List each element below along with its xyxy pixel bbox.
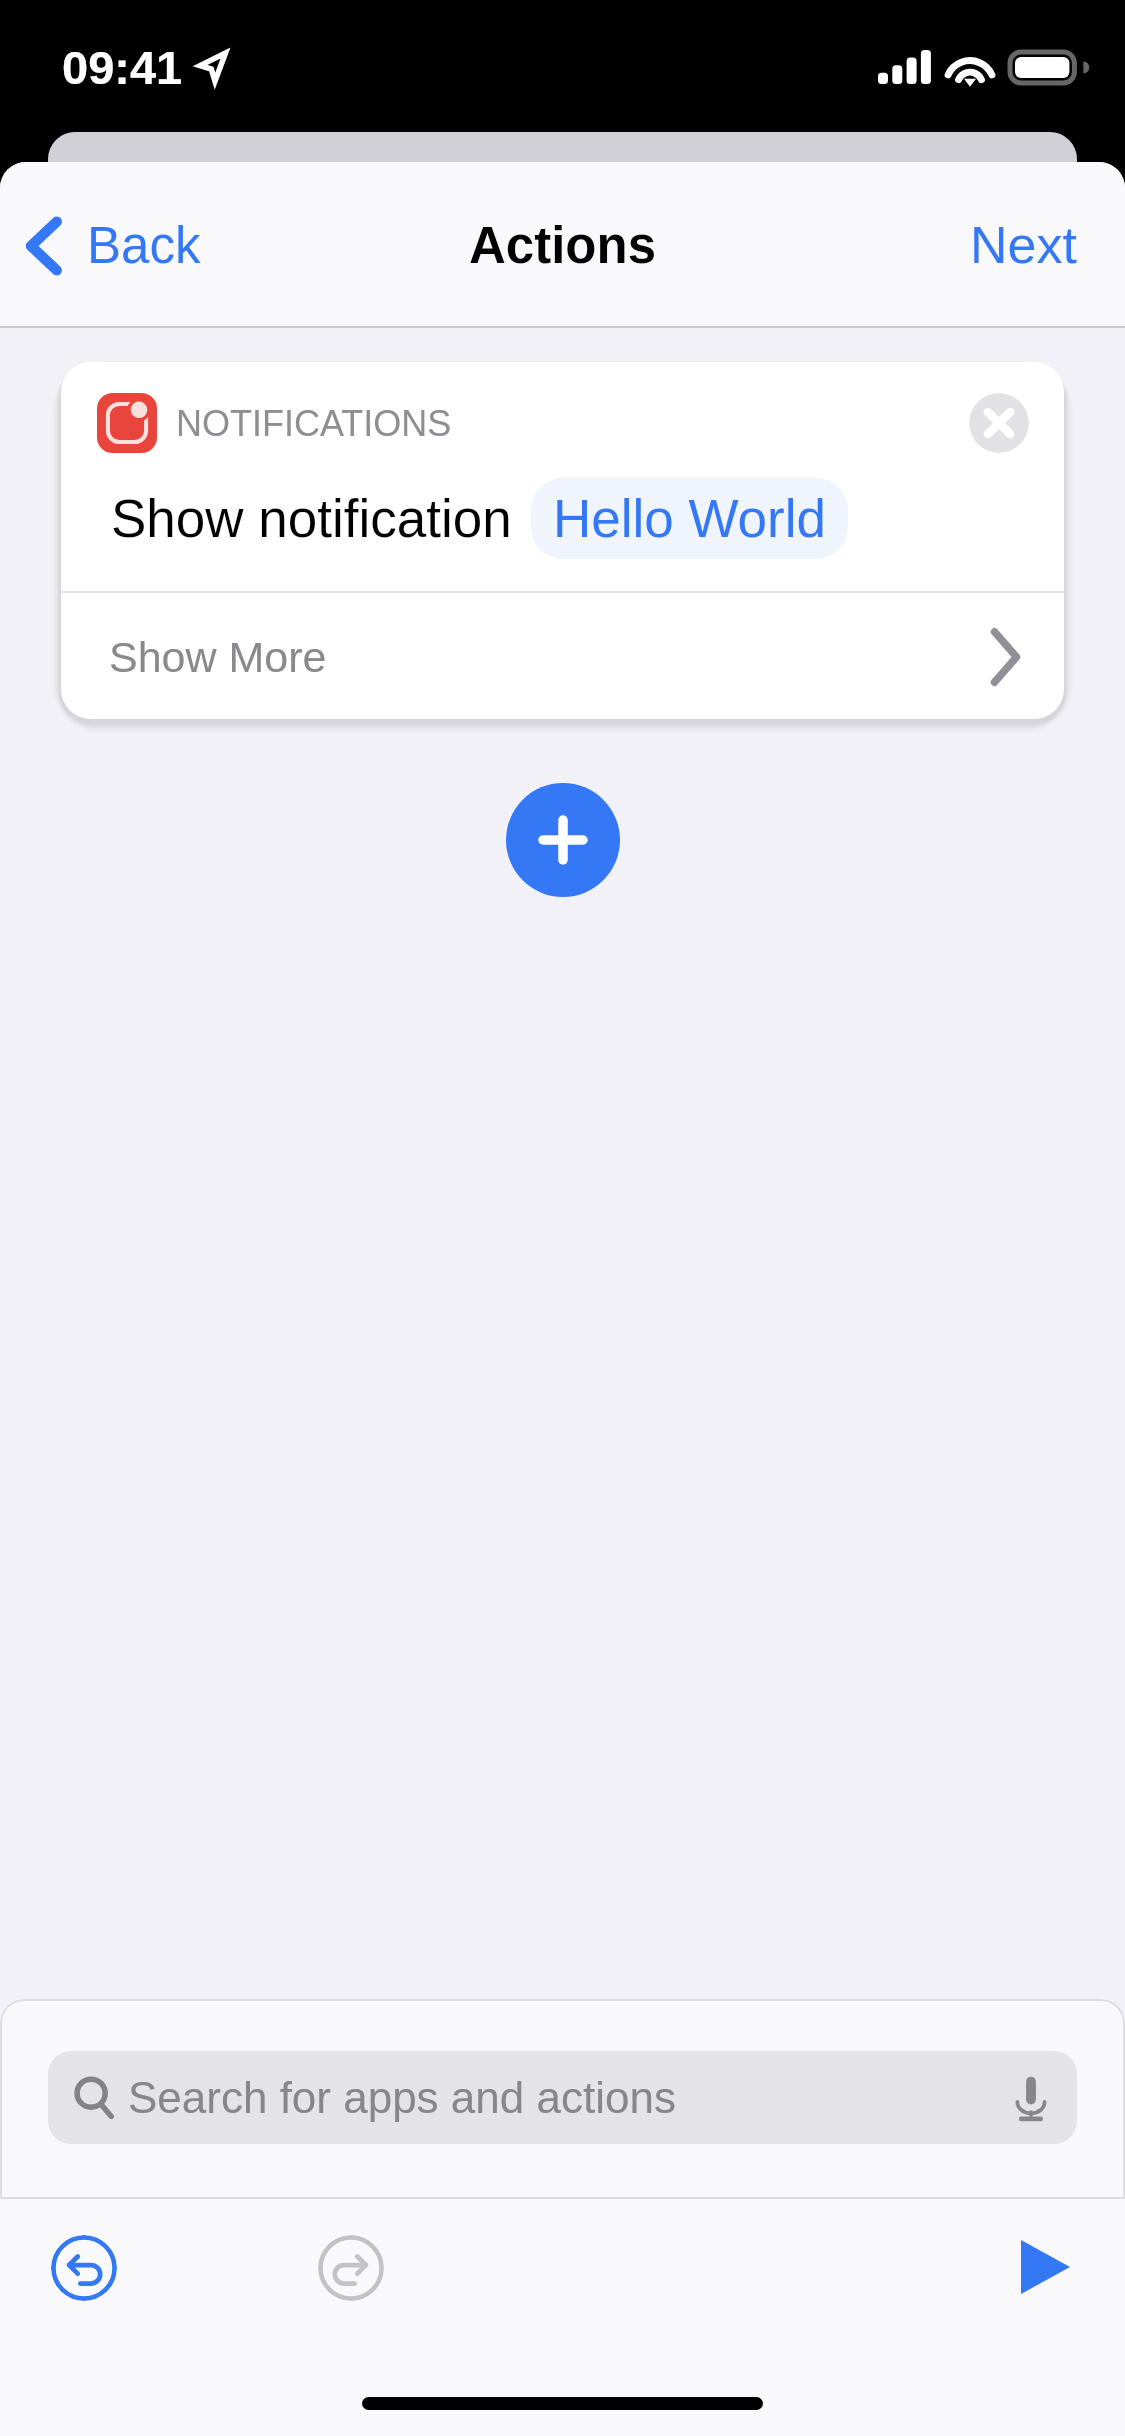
staticText: Actions — [469, 217, 657, 274]
button[interactable]: Next — [930, 194, 1125, 296]
button[interactable]: Show More — [61, 593, 1064, 719]
button[interactable]: Redo — [318, 2235, 384, 2301]
staticText: Back — [87, 217, 201, 274]
button[interactable]: Search for apps and actions — [48, 2051, 1077, 2144]
staticText: 09:41 — [62, 41, 183, 94]
button[interactable]: Remove action — [969, 393, 1029, 453]
staticText: Next — [970, 216, 1077, 274]
staticText: NOTIFICATIONS — [176, 403, 452, 443]
staticText: Show More — [109, 633, 327, 681]
button[interactable]: Run shortcut — [1001, 2223, 1089, 2311]
button[interactable]: Add action — [506, 783, 620, 897]
staticText: Show notification — [111, 489, 512, 548]
staticText: Hello World — [553, 489, 826, 548]
staticText: Search for apps and actions — [128, 2073, 676, 2122]
button[interactable]: Hello World — [531, 478, 848, 559]
button[interactable]: Back — [0, 197, 227, 294]
button[interactable]: Undo — [51, 2235, 117, 2301]
